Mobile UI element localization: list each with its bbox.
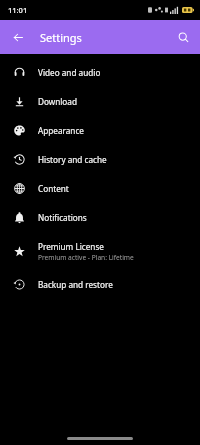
button[interactable]: Download — [0, 87, 200, 116]
button[interactable]: Video and audio — [0, 58, 200, 87]
button[interactable]: Back — [8, 27, 28, 47]
staticText: Notifications — [38, 212, 87, 223]
button[interactable]: Backup and restore — [0, 270, 200, 299]
button[interactable]: Content — [0, 174, 200, 203]
button[interactable]: Notifications — [0, 203, 200, 232]
staticText: Download — [38, 96, 77, 107]
button[interactable]: Search — [173, 27, 193, 47]
button[interactable]: History and cache — [0, 145, 200, 174]
staticText: History and cache — [38, 154, 107, 165]
staticText: Premium active - Plan: Lifetime — [38, 253, 134, 262]
staticText: Backup and restore — [38, 279, 113, 290]
staticText: 11:01 — [8, 5, 28, 15]
staticText: Content — [38, 183, 69, 194]
button[interactable]: Premium License — [0, 232, 200, 270]
button[interactable]: Appearance — [0, 116, 200, 145]
staticText: Settings — [40, 30, 82, 45]
staticText: Video and audio — [38, 67, 101, 78]
staticText: Premium License — [38, 241, 104, 252]
staticText: Appearance — [38, 125, 84, 136]
